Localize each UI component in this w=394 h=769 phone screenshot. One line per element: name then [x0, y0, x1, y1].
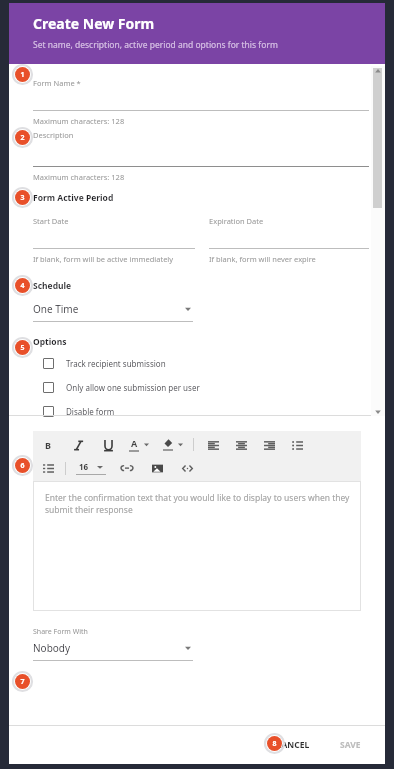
- staticText: Description: [33, 130, 74, 140]
- button[interactable]: Step 6: [15, 458, 30, 473]
- staticText: 16: [79, 461, 89, 472]
- button[interactable]: Step 3: [15, 190, 30, 205]
- staticText: Start Date: [33, 216, 69, 226]
- button[interactable]: Disable form: [33, 406, 369, 417]
- staticText: Options: [33, 336, 67, 348]
- staticText: Form Name *: [33, 78, 81, 88]
- staticText: Set name, description, active period and…: [33, 39, 278, 51]
- staticText: CANCEL: [276, 739, 310, 751]
- button[interactable]: SAVE: [332, 733, 369, 757]
- staticText: 2: [20, 133, 25, 143]
- staticText: SAVE: [340, 739, 361, 751]
- staticText: B: [45, 439, 51, 451]
- staticText: If blank, form will never expire: [209, 254, 316, 264]
- button[interactable]: Description: [33, 130, 369, 182]
- button[interactable]: Bold: [41, 438, 55, 452]
- button[interactable]: Expiration Date: [209, 216, 369, 264]
- staticText: Form Active Period: [33, 192, 114, 204]
- staticText: Maximum characters: 128: [33, 116, 125, 126]
- staticText: Schedule: [33, 280, 72, 292]
- button[interactable]: Align center: [234, 438, 248, 452]
- button[interactable]: Step 7: [15, 674, 30, 689]
- button[interactable]: Scroll: [373, 68, 382, 208]
- button[interactable]: Numbered list: [41, 461, 55, 475]
- button[interactable]: Step 8: [267, 736, 282, 751]
- staticText: 3: [20, 193, 25, 203]
- staticText: Expiration Date: [209, 216, 264, 226]
- button[interactable]: Start Date: [33, 216, 195, 264]
- staticText: 4: [20, 281, 25, 291]
- button[interactable]: Bulleted list: [290, 438, 304, 452]
- button[interactable]: Step 5: [15, 340, 30, 355]
- staticText: Maximum characters: 128: [33, 172, 125, 182]
- staticText: If blank, form will be active immediatel…: [33, 254, 174, 264]
- staticText: Track recipient submission: [66, 358, 166, 369]
- staticText: 7: [20, 677, 25, 687]
- button[interactable]: Step 4: [15, 278, 30, 293]
- staticText: One Time: [33, 302, 79, 316]
- button[interactable]: Align left: [206, 438, 220, 452]
- staticText: Enter the confirmation text that you wou…: [45, 492, 351, 515]
- staticText: Nobody: [33, 641, 71, 655]
- button[interactable]: Font size: [76, 461, 106, 475]
- button[interactable]: Form Name *: [33, 78, 369, 126]
- staticText: Disable form: [66, 406, 115, 417]
- staticText: 5: [20, 343, 25, 353]
- button[interactable]: Enter the confirmation text that you wou…: [33, 481, 361, 611]
- button[interactable]: Highlight color: [163, 438, 183, 451]
- staticText: Only allow one submission per user: [66, 382, 200, 393]
- button[interactable]: Step 2: [15, 130, 30, 145]
- button[interactable]: Select Nobody: [33, 641, 193, 661]
- button[interactable]: CANCEL: [268, 733, 318, 757]
- button[interactable]: Insert code: [180, 461, 194, 475]
- button[interactable]: Select One Time: [33, 302, 193, 322]
- button[interactable]: Step 1: [15, 67, 30, 82]
- button[interactable]: Insert image: [150, 461, 164, 475]
- button[interactable]: Only allow one submission per user: [33, 382, 369, 393]
- staticText: A: [131, 437, 138, 449]
- button[interactable]: Track recipient submission: [33, 358, 369, 369]
- button[interactable]: Align right: [262, 438, 276, 452]
- button[interactable]: Insert link: [120, 461, 134, 475]
- staticText: Create New Form: [33, 14, 155, 33]
- button[interactable]: Underline: [101, 438, 115, 452]
- button[interactable]: Text color: [129, 437, 149, 452]
- button[interactable]: Italic: [71, 438, 85, 452]
- staticText: 1: [20, 70, 25, 80]
- staticText: 8: [272, 739, 277, 749]
- staticText: 6: [20, 461, 25, 471]
- staticText: Share Form With: [33, 627, 88, 637]
